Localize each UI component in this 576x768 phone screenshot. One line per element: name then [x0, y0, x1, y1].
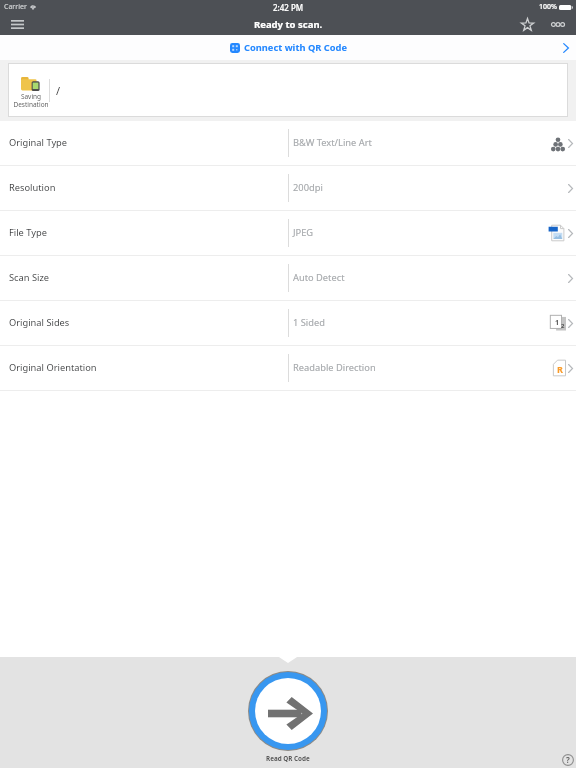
- staticText: Original Sides: [9, 316, 70, 329]
- staticText: 1 Sided: [293, 316, 325, 329]
- button[interactable]: Original Type: [0, 121, 576, 165]
- button[interactable]: Favorite: [508, 14, 546, 35]
- staticText: 2:42 PM: [273, 2, 304, 13]
- staticText: Original Orientation: [9, 361, 97, 374]
- staticText: B&W Text/Line Art: [293, 136, 372, 149]
- button[interactable]: Read QR Code: [249, 672, 327, 750]
- staticText: 1: [555, 318, 560, 328]
- staticText: Auto Detect: [293, 271, 345, 284]
- staticText: Scan Size: [9, 271, 50, 284]
- staticText: /: [56, 83, 61, 98]
- staticText: Connect with QR Code: [244, 41, 347, 54]
- staticText: Original Type: [9, 136, 68, 149]
- staticText: Readable Direction: [293, 361, 376, 374]
- button[interactable]: File Type: [0, 211, 576, 255]
- staticText: JPEG: [293, 226, 314, 239]
- staticText: Saving Destination: [13, 92, 49, 109]
- staticText: Resolution: [9, 181, 56, 194]
- staticText: 100%: [539, 2, 557, 12]
- button[interactable]: Scan Size: [0, 256, 576, 300]
- button[interactable]: Help: [561, 753, 574, 766]
- button[interactable]: More options: [546, 14, 570, 35]
- staticText: Ready to scan.: [254, 18, 323, 31]
- staticText: File Type: [9, 226, 47, 239]
- staticText: 200dpi: [293, 181, 323, 194]
- button[interactable]: Original Sides: [0, 301, 576, 345]
- button[interactable]: Resolution: [0, 166, 576, 210]
- staticText: ?: [566, 754, 570, 765]
- button[interactable]: Menu: [0, 14, 34, 35]
- button[interactable]: Saving Destination: [8, 63, 568, 117]
- staticText: Carrier: [4, 2, 27, 12]
- button[interactable]: Connect with QR Code: [0, 35, 576, 60]
- button[interactable]: Original Orientation: [0, 346, 576, 390]
- staticText: Read QR Code: [266, 754, 310, 763]
- staticText: R: [557, 363, 563, 375]
- staticText: 2: [561, 322, 565, 330]
